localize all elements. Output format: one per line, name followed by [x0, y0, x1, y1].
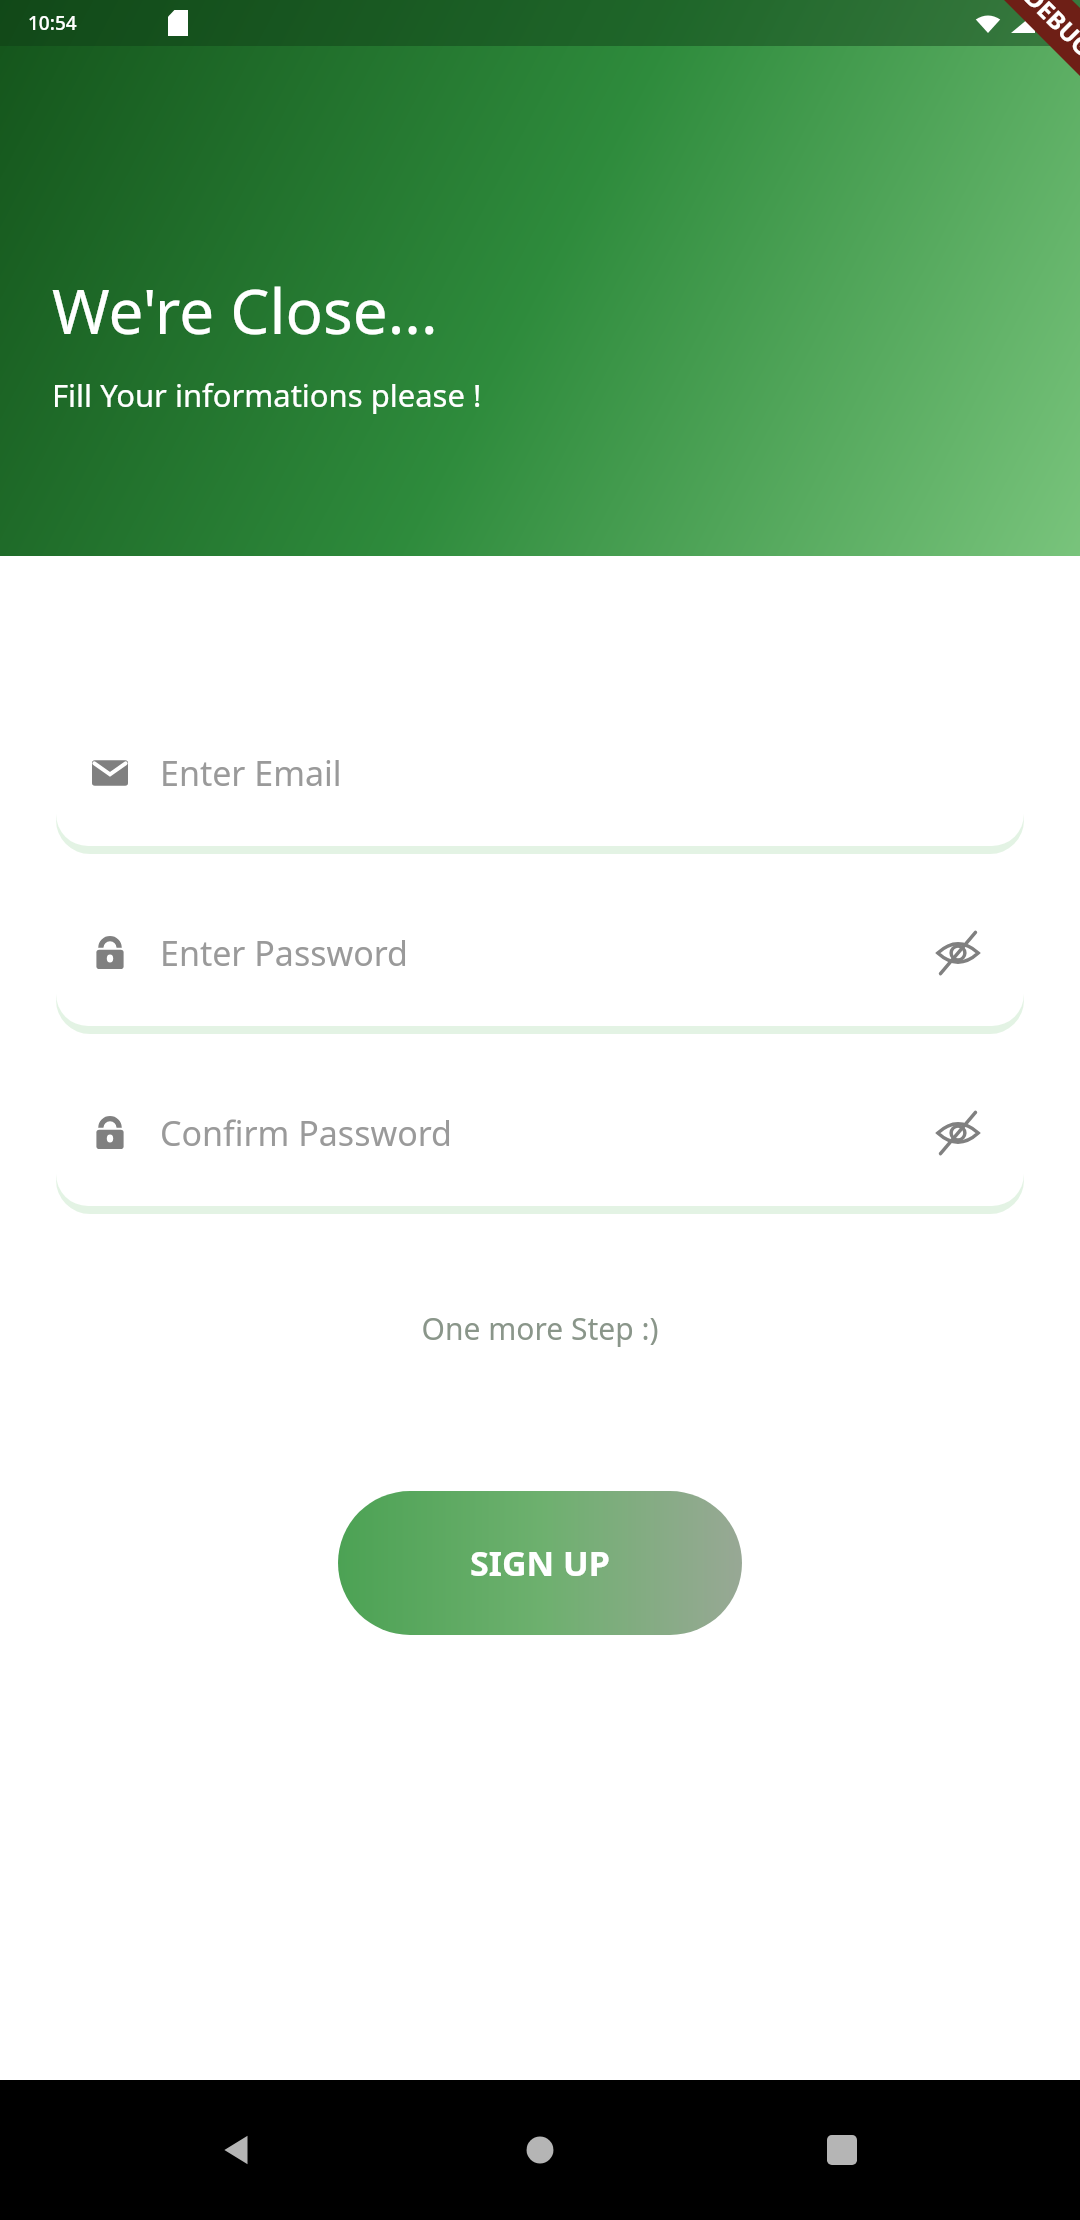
staticText: Enter Email: [160, 750, 342, 796]
button[interactable]: Confirm Password: [56, 1060, 1024, 1206]
staticText: Enter Password: [160, 930, 409, 976]
button[interactable]: Show password: [926, 1101, 990, 1165]
staticText: SIGN UP: [470, 1540, 610, 1586]
button[interactable]: Recents: [810, 2118, 874, 2182]
staticText: We're Close...: [52, 268, 438, 352]
staticText: 10:54: [28, 10, 77, 36]
button[interactable]: Home: [508, 2118, 572, 2182]
staticText: Fill Your informations please !: [52, 374, 482, 416]
button[interactable]: Enter Password: [56, 880, 1024, 1026]
staticText: Confirm Password: [160, 1110, 452, 1156]
button[interactable]: Back: [206, 2118, 270, 2182]
button[interactable]: SIGN UP: [338, 1491, 742, 1635]
button[interactable]: Enter Email: [56, 700, 1024, 846]
button[interactable]: Show password: [926, 921, 990, 985]
staticText: One more Step :): [0, 1308, 1080, 1349]
staticText: DEBUG: [1018, 0, 1080, 63]
